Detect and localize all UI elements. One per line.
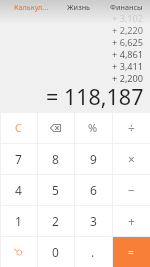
staticText: + [128, 213, 135, 229]
button[interactable]: 1 [0, 205, 37, 236]
button[interactable]: % [74, 112, 112, 143]
button[interactable]: 5 [37, 174, 74, 205]
button[interactable]: 3 [74, 205, 112, 236]
staticText: 3 [90, 213, 97, 229]
button[interactable]: ÷ [112, 112, 150, 143]
staticText: % [88, 120, 98, 135]
staticText: + 3,411 [112, 60, 144, 73]
button[interactable]: 7 [0, 143, 37, 174]
button[interactable]: Жизнь [55, 0, 103, 13]
staticText: C [15, 121, 22, 135]
staticText: + 6,625 [112, 36, 144, 49]
staticText: ÷ [128, 120, 135, 136]
button[interactable]: 0 [37, 236, 74, 267]
button[interactable]: × [112, 143, 150, 174]
staticText: − [128, 182, 135, 198]
staticText: 6 [90, 182, 97, 198]
staticText: 0 [52, 244, 59, 260]
button[interactable]: Equals [112, 236, 150, 267]
staticText: + 2,220 [112, 24, 144, 37]
button[interactable]: 6 [74, 174, 112, 205]
staticText: 1 [15, 213, 22, 229]
button[interactable]: Калькул... [7, 0, 55, 13]
staticText: × [128, 151, 135, 167]
button[interactable]: Финансы [103, 0, 150, 13]
staticText: + 4,861 [112, 48, 144, 61]
button[interactable]: Scientific calculator [0, 236, 37, 267]
staticText: 5 [52, 182, 59, 198]
staticText: Жизнь [67, 2, 91, 12]
button[interactable]: + [112, 205, 150, 236]
button[interactable]: 8 [37, 143, 74, 174]
button[interactable]: C [0, 112, 37, 143]
staticText: + 2,200 [112, 72, 144, 85]
staticText: 9 [90, 151, 97, 167]
staticText: 7 [15, 151, 22, 167]
staticText: . [91, 244, 95, 260]
staticText: Калькул... [14, 2, 49, 12]
button[interactable]: Backspace [37, 112, 74, 143]
button[interactable]: 4 [0, 174, 37, 205]
staticText: = 118,187 [46, 82, 144, 111]
staticText: 4 [15, 182, 22, 198]
staticText: Финансы [110, 2, 143, 12]
staticText: + 3,102 [112, 12, 144, 25]
staticText: 8 [52, 151, 59, 167]
staticText: = [128, 245, 134, 259]
button[interactable]: 2 [37, 205, 74, 236]
button[interactable]: . [74, 236, 112, 267]
staticText: 2 [52, 213, 59, 229]
button[interactable]: 9 [74, 143, 112, 174]
button[interactable]: − [112, 174, 150, 205]
